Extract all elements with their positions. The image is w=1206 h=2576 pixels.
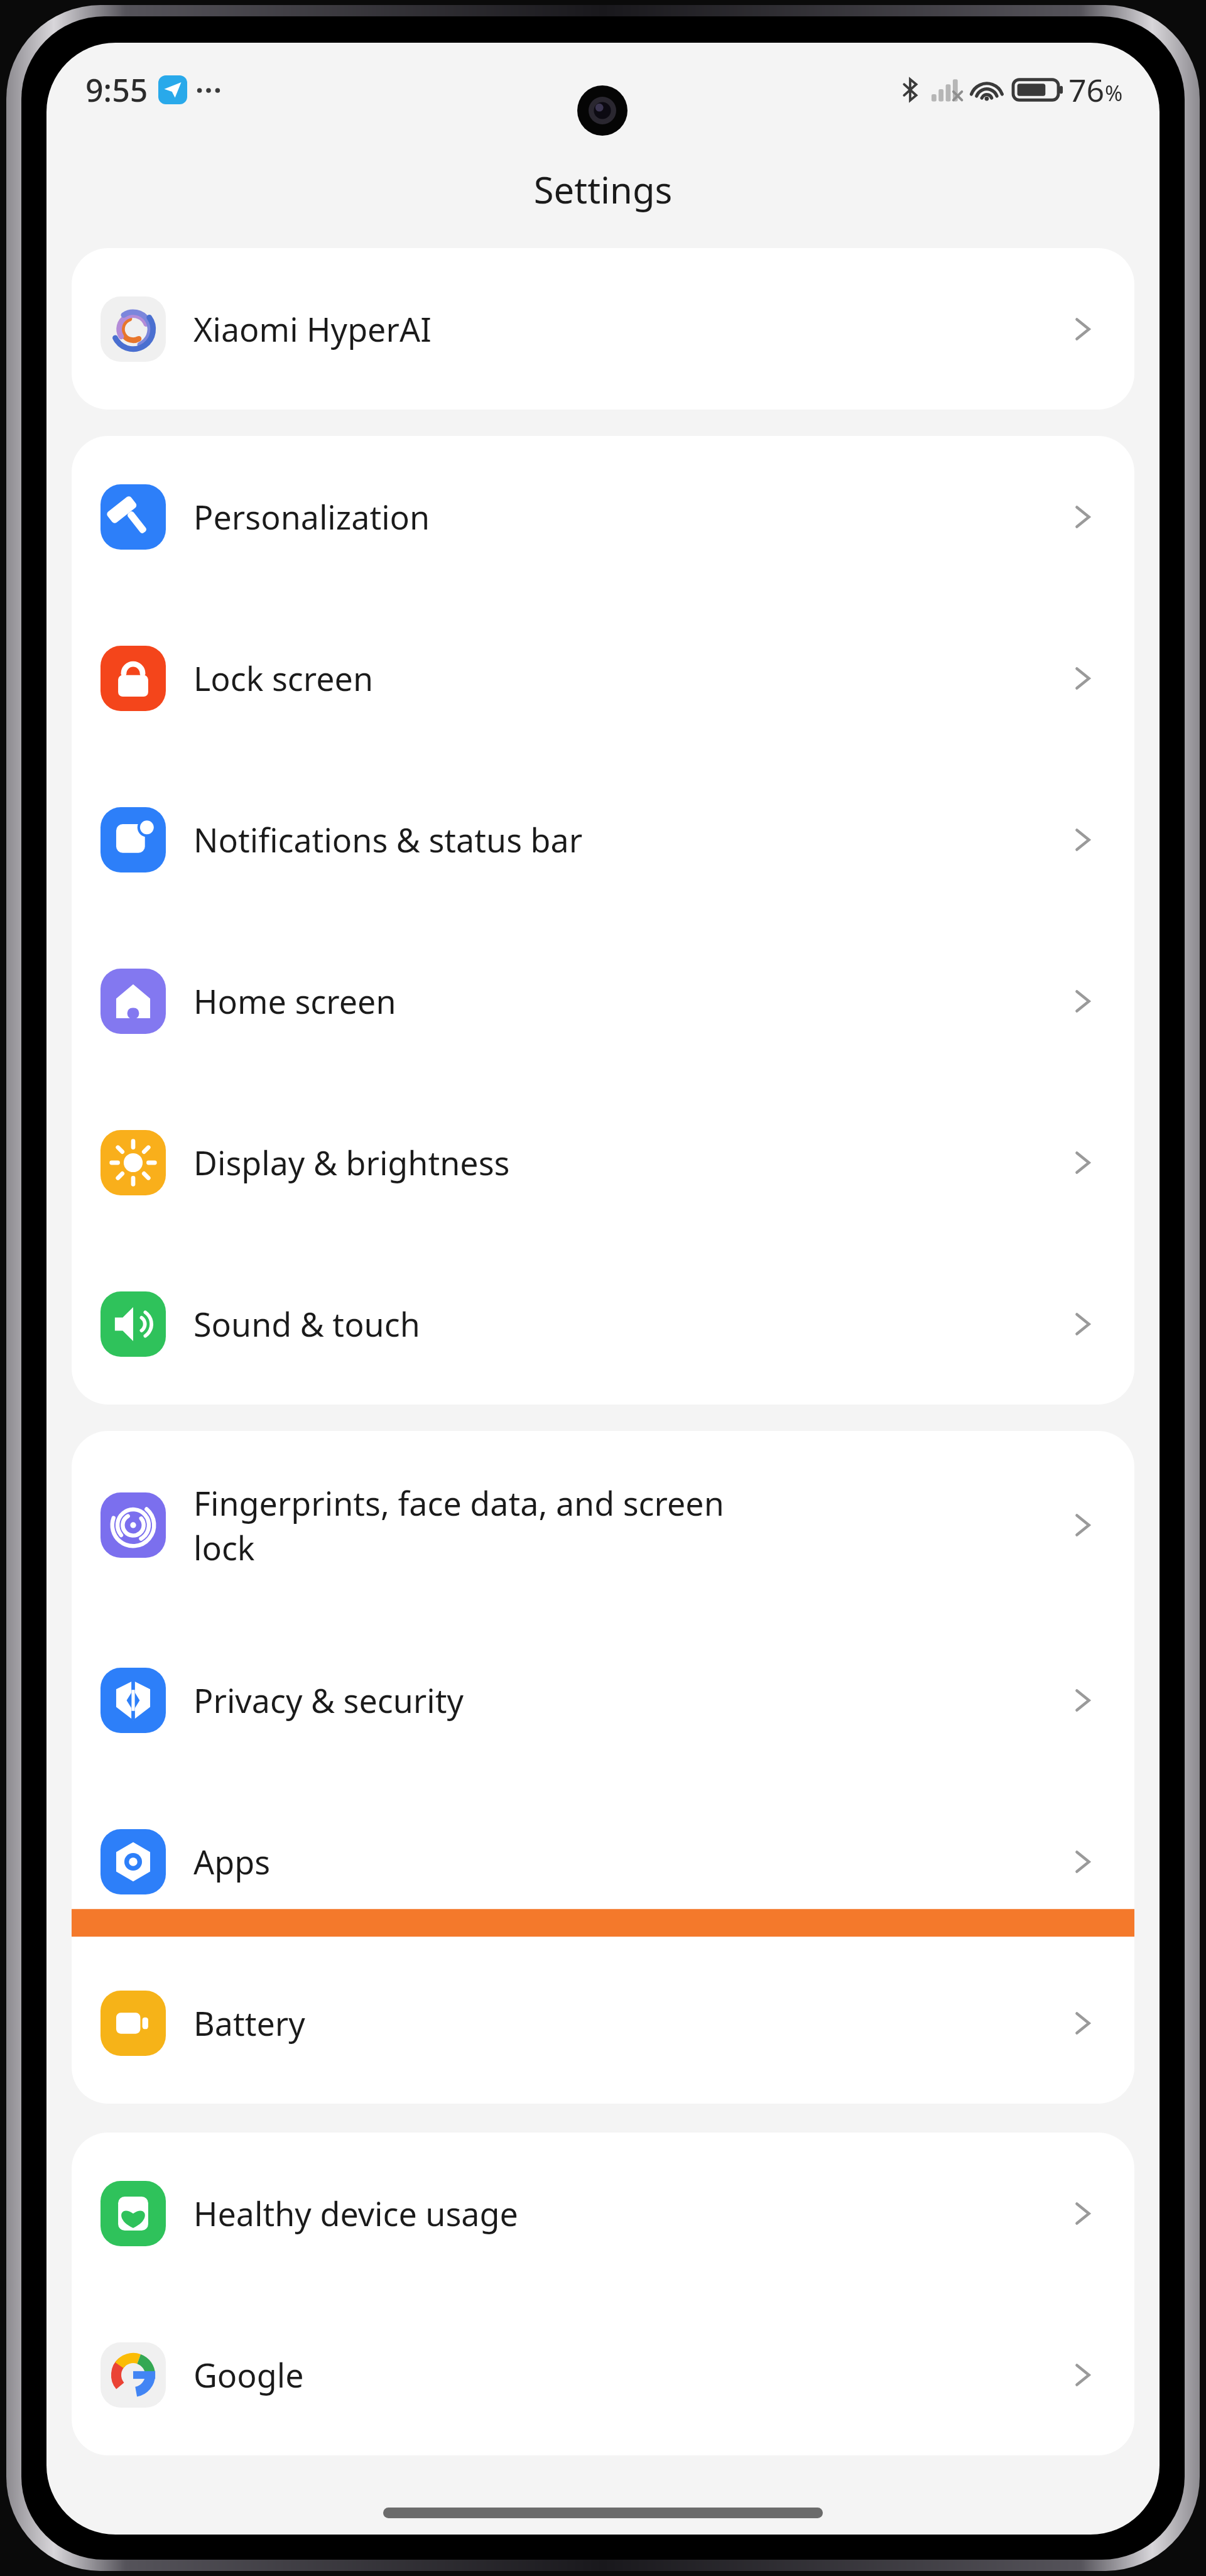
button[interactable]: Lock screen <box>72 597 1134 759</box>
staticText: Fingerprints, face data, and screen <box>193 1481 724 1525</box>
button[interactable]: Privacy & security <box>72 1619 1134 1781</box>
button[interactable]: Healthy device usage <box>72 2133 1134 2294</box>
staticText: Healthy device usage <box>193 2191 518 2236</box>
staticText: Privacy & security <box>193 1678 464 1722</box>
staticText: 9:55 <box>85 68 148 111</box>
staticText: Apps <box>193 1839 271 1884</box>
staticText: Xiaomi HyperAI <box>193 307 432 351</box>
button[interactable]: Sound & touch <box>72 1243 1134 1405</box>
staticText: lock <box>193 1525 255 1570</box>
staticText: Home screen <box>193 979 396 1023</box>
staticText: 76 <box>1068 68 1105 111</box>
staticText: Display & brightness <box>193 1140 510 1185</box>
button[interactable]: Home screen <box>72 920 1134 1082</box>
button[interactable]: Notifications & status bar <box>72 759 1134 920</box>
button[interactable]: Personalization <box>72 436 1134 597</box>
button[interactable]: Apps <box>72 1781 1134 1942</box>
staticText: Personalization <box>193 494 430 539</box>
staticText: Settings <box>46 165 1160 214</box>
staticText: Notifications & status bar <box>193 817 583 862</box>
staticText: Google <box>193 2352 304 2397</box>
staticText: % <box>1105 79 1123 107</box>
button[interactable]: Battery <box>72 1942 1134 2104</box>
staticText: Battery <box>193 2001 305 2045</box>
button[interactable]: Display & brightness <box>72 1082 1134 1243</box>
button[interactable]: Fingerprints, face data, and screen <box>72 1431 1134 1619</box>
button[interactable]: Google <box>72 2294 1134 2455</box>
button[interactable]: Xiaomi HyperAI <box>72 248 1134 410</box>
staticText: Lock screen <box>193 656 374 700</box>
staticText: Sound & touch <box>193 1302 420 1346</box>
